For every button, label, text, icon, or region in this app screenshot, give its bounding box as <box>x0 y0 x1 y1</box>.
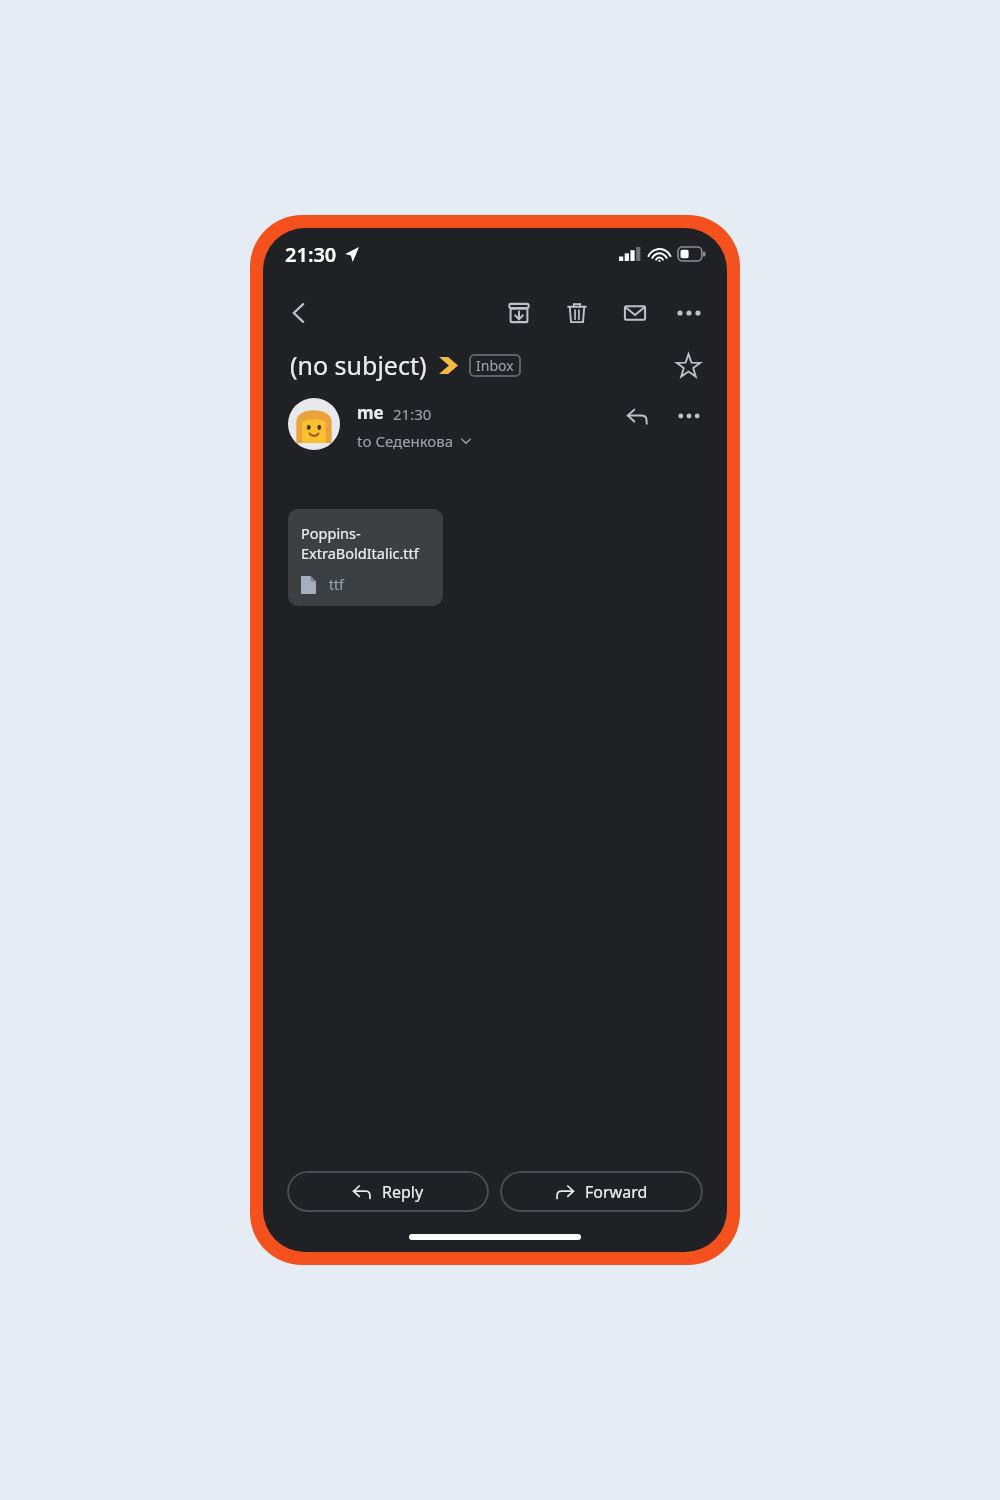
staticText: 21:30 <box>393 404 432 424</box>
button[interactable]: Inbox <box>469 354 521 377</box>
staticText: ttf <box>329 575 344 594</box>
button[interactable]: Reply <box>619 398 655 434</box>
button[interactable]: Back <box>281 295 317 331</box>
button[interactable]: Poppins-ExtraBoldItalic.ttf <box>288 509 443 606</box>
staticText: Poppins-ExtraBoldItalic.ttf <box>301 523 433 564</box>
button[interactable]: Reply <box>287 1171 489 1212</box>
button[interactable]: More options <box>671 295 707 331</box>
button[interactable]: Archive <box>501 295 537 331</box>
staticText: me <box>357 401 384 424</box>
button[interactable]: Mark unread <box>617 295 653 331</box>
staticText: (no subject) <box>290 348 427 382</box>
button[interactable]: More options <box>671 398 707 434</box>
staticText: to Седенкова <box>357 431 454 451</box>
staticText: 21:30 <box>285 241 337 268</box>
button[interactable]: Star <box>669 346 707 384</box>
staticText: Inbox <box>476 356 514 375</box>
button[interactable]: Delete <box>559 295 595 331</box>
button[interactable]: to Седенкова <box>357 431 472 451</box>
button[interactable]: Forward <box>500 1171 703 1212</box>
staticText: Reply <box>382 1181 424 1203</box>
staticText: Forward <box>585 1181 648 1203</box>
button[interactable]: Sender avatar <box>288 398 340 450</box>
